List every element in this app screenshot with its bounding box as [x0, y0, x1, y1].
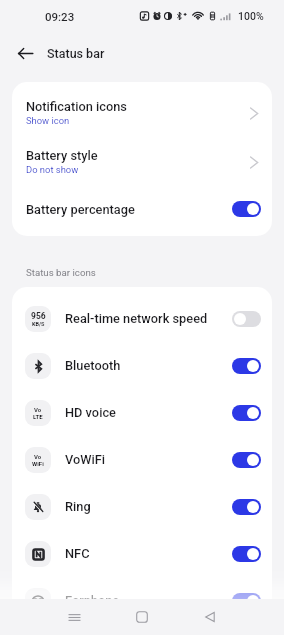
button[interactable]: Bluetooth [12, 342, 272, 389]
button[interactable]: Back [9, 37, 41, 69]
staticText: Real-time network speed [65, 311, 208, 326]
staticText: 956 [31, 311, 46, 321]
staticText: HD voice [65, 405, 116, 420]
button[interactable]: Vo [12, 389, 272, 436]
staticText: Notification icons [26, 99, 127, 114]
button[interactable]: Toggle on [232, 452, 261, 468]
button[interactable]: Earphone [12, 577, 272, 624]
button[interactable]: Battery percentage [12, 186, 272, 232]
button[interactable]: Toggle on [232, 358, 261, 374]
staticText: KB/S [32, 321, 45, 327]
button[interactable]: NFC [12, 530, 272, 577]
button[interactable]: Toggle on [232, 546, 261, 562]
button[interactable]: Toggle on [232, 201, 261, 217]
button[interactable]: Notification icons [12, 88, 272, 137]
button[interactable]: Recents [56, 599, 92, 635]
staticText: Battery style [26, 148, 98, 163]
staticText: Vo [34, 406, 42, 413]
button[interactable]: Back [192, 599, 228, 635]
staticText: Bluetooth [65, 358, 121, 373]
staticText: VoWiFi [65, 452, 106, 467]
button[interactable]: Vo [12, 436, 272, 483]
button[interactable]: Ring [12, 483, 272, 530]
staticText: 100% [238, 10, 264, 22]
staticText: Status bar [47, 46, 105, 61]
staticText: Battery percentage [26, 202, 135, 217]
staticText: Earphone [65, 593, 120, 608]
staticText: Vo [34, 453, 42, 460]
staticText: Ring [65, 499, 91, 514]
staticText: LTE [33, 413, 43, 420]
button[interactable]: 956 [12, 295, 272, 342]
button[interactable]: Toggle on [232, 405, 261, 421]
button[interactable]: Battery style [12, 137, 272, 186]
staticText: NFC [65, 546, 90, 561]
button[interactable]: Toggle off [232, 311, 261, 327]
staticText: Do not show [26, 164, 79, 175]
staticText: WiFi [32, 460, 44, 467]
staticText: 09:23 [45, 10, 75, 23]
button[interactable]: Toggle on [232, 593, 261, 609]
button[interactable]: Home [124, 599, 160, 635]
button[interactable]: Toggle on [232, 499, 261, 515]
staticText: Status bar icons [26, 267, 96, 278]
staticText: Show icon [26, 115, 70, 126]
